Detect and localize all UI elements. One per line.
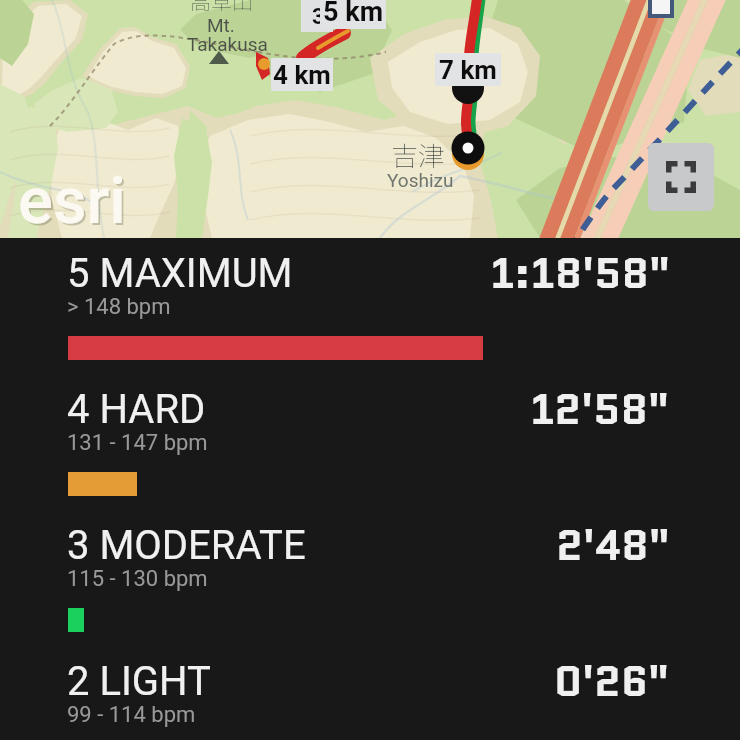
staticText: esri: [18, 163, 126, 238]
button[interactable]: 3: [0, 0, 740, 238]
staticText: 3: [312, 4, 325, 30]
staticText: 0'26": [554, 651, 670, 711]
staticText: Yoshizu: [387, 169, 454, 191]
button[interactable]: 4 HARD: [0, 386, 740, 521]
staticText: Mt.: [207, 14, 235, 36]
staticText: 4 HARD: [67, 386, 206, 433]
button[interactable]: 5 MAXIMUM: [0, 250, 740, 385]
staticText: 5 MAXIMUM: [67, 250, 293, 297]
staticText: 2 LIGHT: [67, 658, 211, 705]
staticText: 12'58": [530, 379, 670, 439]
button[interactable]: 3 MODERATE: [0, 522, 740, 657]
staticText: 5 km: [323, 0, 384, 28]
staticText: 131 - 147 bpm: [67, 430, 208, 456]
button[interactable]: Expand map to full screen: [648, 143, 714, 211]
staticText: 1:18'58": [490, 243, 670, 303]
staticText: 3 MODERATE: [67, 522, 306, 569]
staticText: > 148 bpm: [67, 294, 171, 320]
staticText: 2'48": [556, 515, 670, 575]
button[interactable]: 2 LIGHT: [0, 658, 740, 740]
staticText: 99 - 114 bpm: [67, 702, 196, 728]
staticText: 7 km: [439, 55, 497, 85]
staticText: 115 - 130 bpm: [67, 566, 208, 592]
staticText: 吉津: [391, 135, 445, 174]
staticText: 4 km: [273, 60, 331, 90]
staticText: esri: [20, 165, 128, 238]
staticText: 高草山: [190, 0, 253, 16]
staticText: Takakusa: [187, 33, 268, 55]
